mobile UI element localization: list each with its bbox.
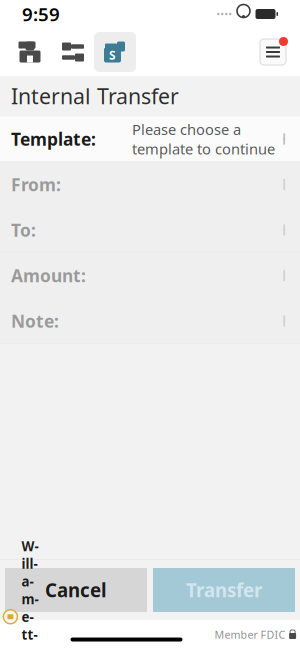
- staticText: Amount:: [11, 264, 86, 287]
- button[interactable]: Template:: [0, 116, 300, 161]
- button[interactable]: From:: [0, 162, 300, 207]
- button[interactable]: To:: [0, 207, 300, 252]
- button[interactable]: Cancel: [5, 568, 147, 612]
- staticText: From:: [11, 173, 61, 196]
- button[interactable]: Amount:: [0, 253, 300, 298]
- staticText: S: [109, 47, 116, 63]
- button[interactable]: Note:: [0, 298, 300, 343]
- staticText: To:: [11, 218, 36, 241]
- staticText: Template:: [11, 127, 96, 150]
- button[interactable]: Menu: [258, 37, 288, 67]
- staticText: Willamette: [21, 537, 38, 649]
- staticText: Transfer: [186, 578, 262, 602]
- button[interactable]: Home: [8, 32, 52, 72]
- staticText: Please choose a template to continue: [132, 119, 275, 158]
- staticText: Member FDIC: [215, 627, 286, 642]
- staticText: Internal Transfer: [11, 82, 179, 110]
- button[interactable]: Transfer: [153, 568, 295, 612]
- staticText: Cancel: [45, 578, 107, 602]
- button[interactable]: Internal Transfer: [94, 32, 136, 72]
- staticText: 9:59: [22, 2, 60, 26]
- button[interactable]: Transfers: [52, 32, 94, 72]
- staticText: Note:: [11, 309, 59, 332]
